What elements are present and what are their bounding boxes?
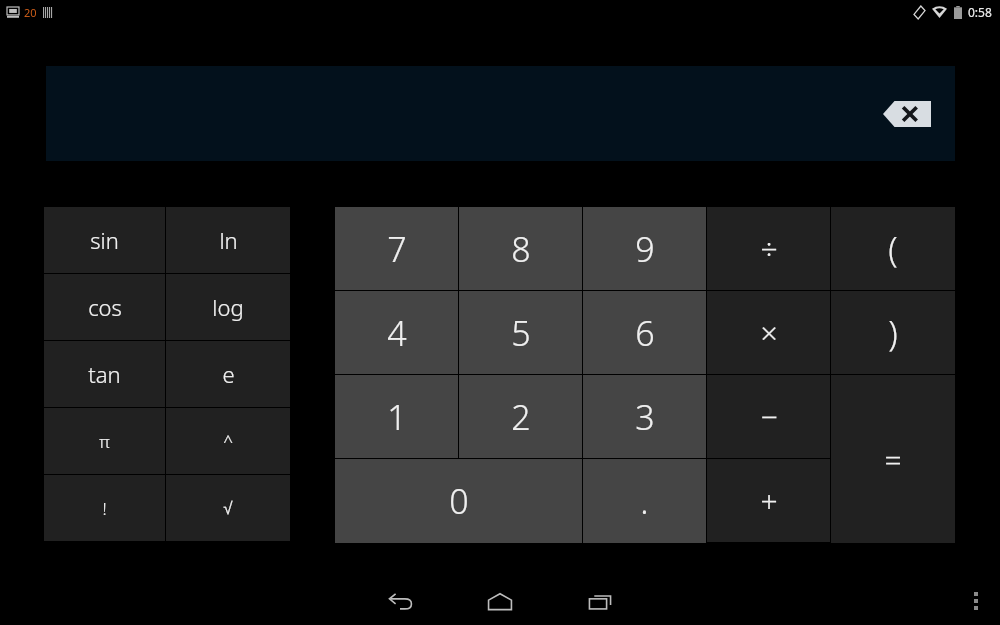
staticText: 0 (449, 478, 469, 524)
staticText: = (884, 439, 902, 480)
button[interactable]: ! (44, 475, 165, 541)
staticText: 0:58 (968, 4, 992, 20)
button[interactable]: × (707, 291, 830, 374)
staticText: . (640, 478, 649, 524)
button[interactable]: 8 (459, 207, 582, 290)
button[interactable]: 5 (459, 291, 582, 374)
staticText: log (212, 292, 244, 322)
button[interactable]: cos (44, 274, 165, 340)
button[interactable]: + (707, 459, 830, 542)
button[interactable]: ln (166, 207, 290, 273)
staticText: 1 (387, 394, 407, 440)
staticText: π (99, 430, 110, 453)
button[interactable]: More options (956, 581, 996, 621)
staticText: 20 (24, 5, 37, 20)
staticText: ! (102, 497, 107, 520)
staticText: ln (219, 225, 238, 255)
staticText: tan (88, 359, 121, 389)
button[interactable]: 7 (335, 207, 458, 290)
button[interactable]: π (44, 408, 165, 474)
button[interactable]: Backspace (46, 66, 955, 161)
staticText: 9 (635, 226, 655, 272)
staticText: 3 (635, 394, 655, 440)
staticText: cos (88, 292, 122, 322)
button[interactable]: Back (378, 579, 422, 623)
staticText: 4 (387, 310, 407, 356)
staticText: 8 (511, 226, 531, 272)
button[interactable]: Backspace (883, 101, 931, 127)
button[interactable]: 0 (335, 459, 582, 543)
button[interactable]: tan (44, 341, 165, 407)
staticText: sin (90, 225, 119, 255)
staticText: 6 (635, 310, 655, 356)
staticText: ) (888, 310, 898, 356)
button[interactable]: ^ (166, 408, 290, 474)
button[interactable]: √ (166, 475, 290, 541)
button[interactable]: = (831, 375, 955, 543)
button[interactable]: 1 (335, 375, 458, 458)
button[interactable]: Home (478, 579, 522, 623)
button[interactable]: sin (44, 207, 165, 273)
button[interactable]: Recents (578, 579, 622, 623)
staticText: ÷ (760, 228, 778, 269)
staticText: √ (223, 499, 233, 518)
staticText: e (222, 359, 235, 389)
button[interactable]: − (707, 375, 830, 458)
button[interactable]: ( (831, 207, 955, 290)
staticText: 2 (511, 394, 531, 440)
staticText: + (760, 480, 778, 521)
staticText: 7 (387, 226, 407, 272)
button[interactable]: 4 (335, 291, 458, 374)
button[interactable]: ÷ (707, 207, 830, 290)
button[interactable]: 9 (583, 207, 706, 290)
button[interactable]: ) (831, 291, 955, 374)
button[interactable]: 6 (583, 291, 706, 374)
staticText: × (760, 312, 778, 353)
button[interactable]: log (166, 274, 290, 340)
button[interactable]: . (583, 459, 706, 543)
staticText: ^ (223, 430, 233, 453)
button[interactable]: e (166, 341, 290, 407)
staticText: 5 (511, 310, 531, 356)
button[interactable]: 3 (583, 375, 706, 458)
button[interactable]: 2 (459, 375, 582, 458)
staticText: ( (888, 226, 898, 272)
staticText: − (760, 396, 778, 437)
